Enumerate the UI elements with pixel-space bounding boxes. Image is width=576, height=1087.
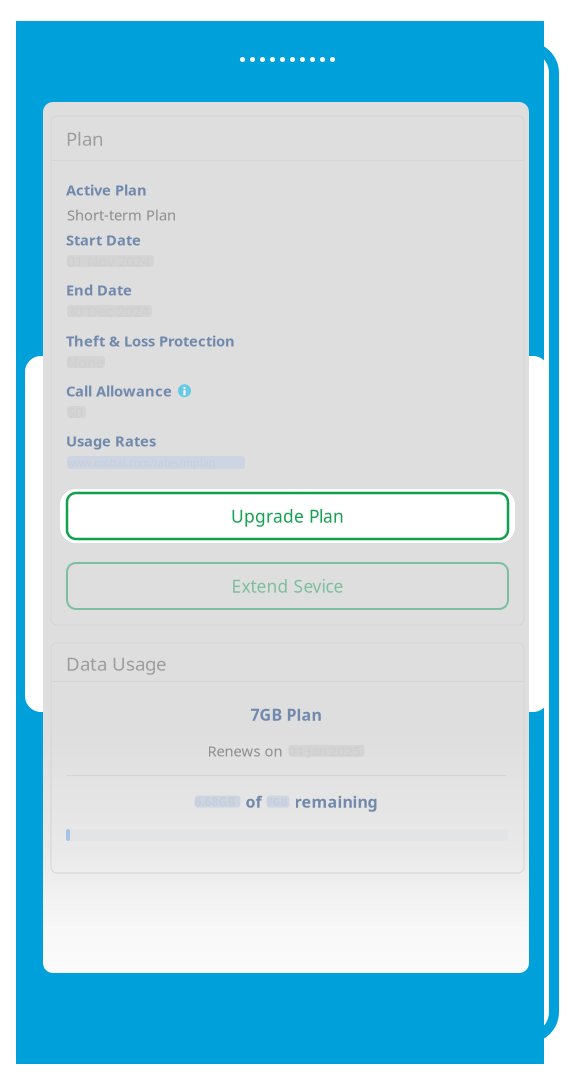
staticText: Upgrade Plan — [231, 504, 344, 527]
staticText: Short-term Plan — [67, 205, 176, 224]
staticText: of — [245, 791, 261, 812]
staticText: End Date — [66, 280, 132, 299]
staticText: None — [67, 352, 104, 372]
staticText: Usage Rates — [66, 431, 156, 450]
staticText: Extend Sevice — [231, 574, 343, 597]
staticText: Call Allowance — [66, 381, 172, 400]
staticText: Start Date — [66, 230, 141, 249]
staticText: 01 Nov 2024 — [67, 251, 150, 271]
staticText: Active Plan — [66, 180, 147, 199]
staticText: 7GB Plan — [250, 704, 321, 725]
staticText: Renews on — [207, 741, 282, 760]
button[interactable]: Extend Sevice — [67, 563, 508, 609]
staticText: Theft & Loss Protection — [66, 331, 235, 350]
staticText: 01 Jan 2025 — [288, 742, 361, 760]
staticText: 7GB — [266, 794, 287, 809]
staticText: $0 — [67, 402, 83, 422]
staticText: remaining — [294, 791, 377, 812]
staticText: 6.68GB — [194, 794, 235, 810]
staticText: www.mobal.com/rates/mplan — [67, 455, 216, 470]
staticText: Data Usage — [66, 651, 167, 676]
button[interactable]: Upgrade Plan — [60, 489, 515, 543]
staticText: 30 Dec 2024 — [67, 301, 149, 321]
staticText: Plan — [66, 126, 104, 151]
